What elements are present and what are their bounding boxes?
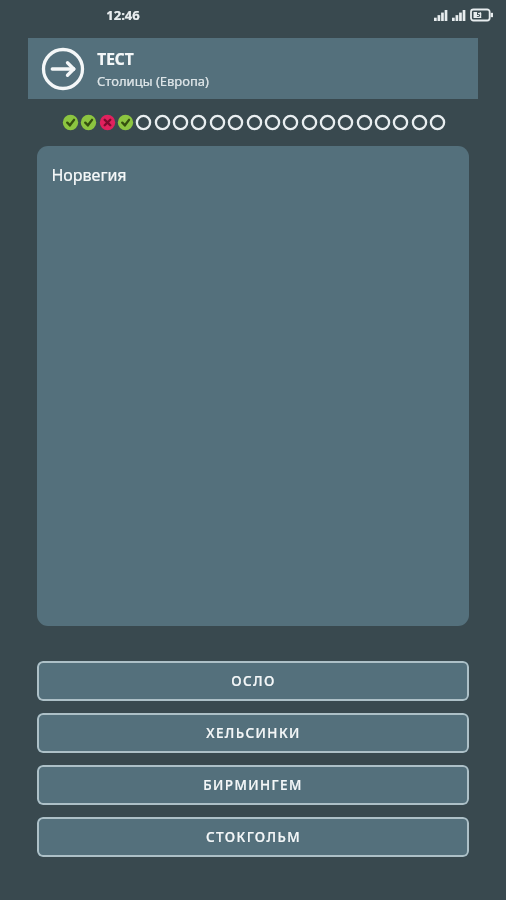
- staticText: ХЕЛЬСИНКИ: [206, 724, 301, 742]
- button[interactable]: СТОКГОЛЬМ: [37, 817, 469, 857]
- staticText: ТЕСТ: [97, 48, 134, 69]
- button[interactable]: ХЕЛЬСИНКИ: [37, 713, 469, 753]
- button[interactable]: БИРМИНГЕМ: [37, 765, 469, 805]
- staticText: Столицы (Европа): [97, 72, 209, 90]
- staticText: СТОКГОЛЬМ: [206, 828, 301, 846]
- staticText: ОСЛО: [231, 672, 276, 690]
- button[interactable]: ОСЛО: [37, 661, 469, 701]
- other: Next test: [41, 47, 85, 91]
- button[interactable]: Next test: [28, 38, 478, 99]
- staticText: БИРМИНГЕМ: [203, 776, 303, 794]
- staticText: 12:46: [106, 6, 140, 24]
- staticText: Норвегия: [51, 164, 127, 186]
- button[interactable]: Норвегия: [37, 146, 469, 626]
- staticText: 57: [476, 10, 485, 20]
